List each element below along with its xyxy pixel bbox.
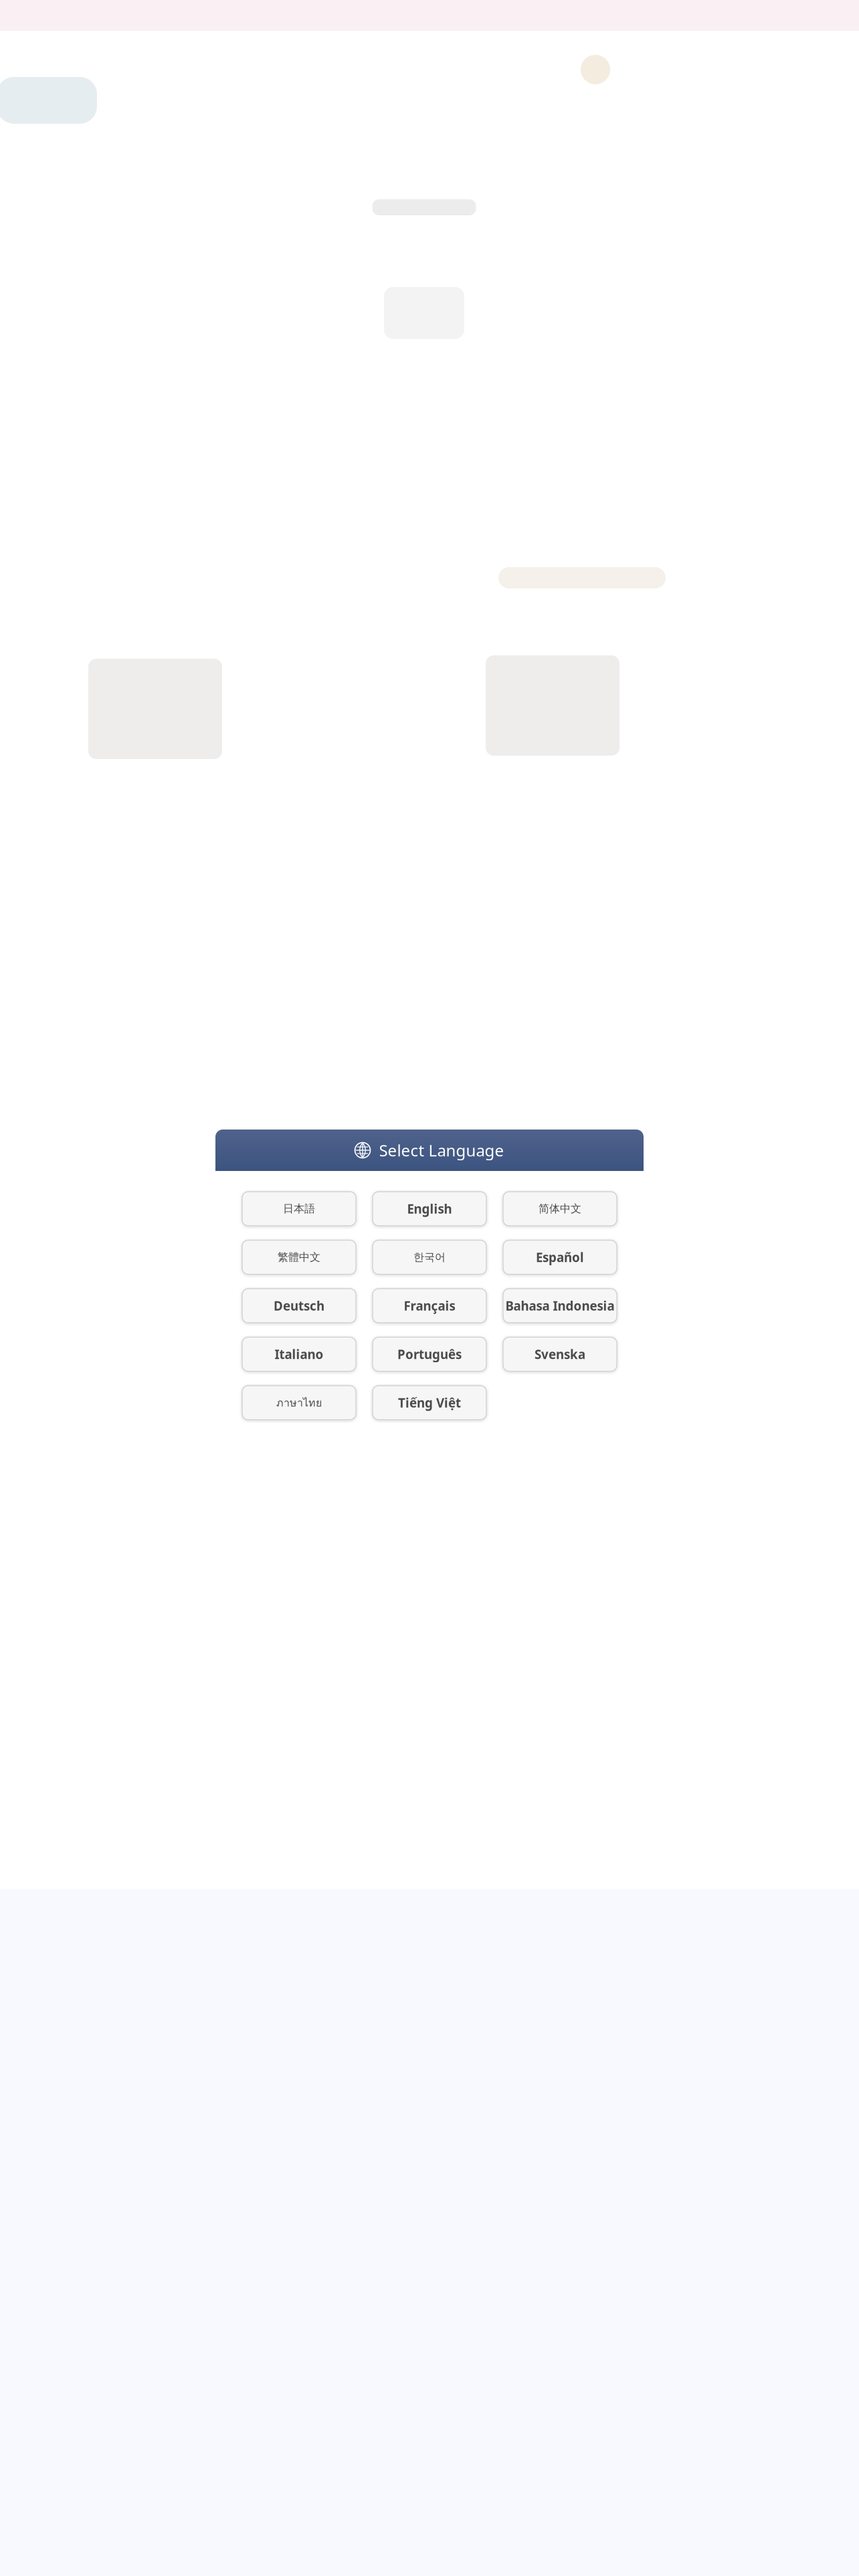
button[interactable]: Español — [503, 1240, 617, 1274]
staticText: Svenska — [535, 1346, 585, 1362]
button[interactable]: Français — [373, 1289, 486, 1323]
staticText: Deutsch — [274, 1297, 324, 1314]
button[interactable]: Bahasa Indonesia — [503, 1289, 617, 1323]
button[interactable]: English — [373, 1192, 486, 1226]
staticText: Select Language — [379, 1140, 504, 1161]
staticText: 繁體中文 — [278, 1251, 320, 1264]
button[interactable]: Italiano — [242, 1337, 356, 1371]
staticText: Español — [536, 1249, 584, 1266]
button[interactable]: ภาษาไทย — [242, 1386, 356, 1420]
staticText: Português — [397, 1346, 462, 1362]
staticText: 日本語 — [283, 1202, 315, 1215]
button[interactable]: 한국어 — [373, 1240, 486, 1274]
button[interactable]: Svenska — [503, 1337, 617, 1371]
button[interactable]: 繁體中文 — [242, 1240, 356, 1274]
staticText: Français — [404, 1297, 455, 1314]
staticText: Bahasa Indonesia — [505, 1297, 614, 1314]
button[interactable]: 简体中文 — [503, 1192, 617, 1226]
staticText: Italiano — [275, 1346, 323, 1362]
staticText: Tiếng Việt — [398, 1394, 461, 1411]
staticText: 한국어 — [413, 1251, 446, 1264]
staticText: English — [407, 1200, 452, 1217]
button[interactable]: Português — [373, 1337, 486, 1371]
button[interactable]: Deutsch — [242, 1289, 356, 1323]
staticText: 简体中文 — [539, 1202, 581, 1215]
button[interactable]: 日本語 — [242, 1192, 356, 1226]
button[interactable]: Tiếng Việt — [373, 1386, 486, 1420]
staticText: ภาษาไทย — [276, 1394, 322, 1411]
